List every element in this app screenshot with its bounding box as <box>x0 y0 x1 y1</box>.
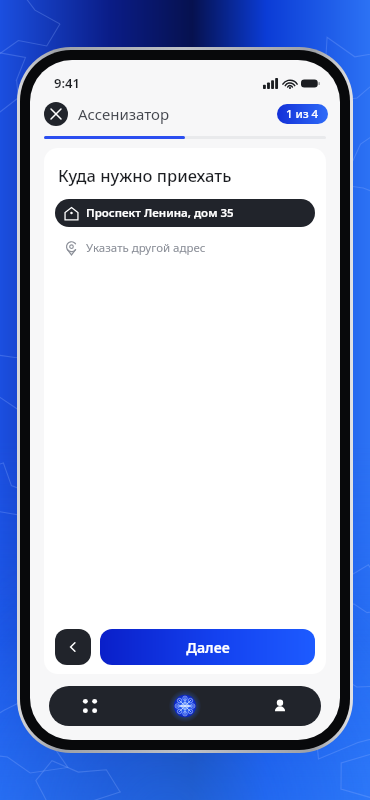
button[interactable]: Профиль <box>230 686 321 726</box>
staticText: 1 из 4 <box>286 106 319 122</box>
staticText: Далее <box>186 638 230 657</box>
button[interactable]: Назад <box>55 629 91 665</box>
button[interactable]: Указать другой адрес <box>55 235 315 261</box>
staticText: Куда нужно приехать <box>58 164 232 186</box>
button[interactable]: Закрыть <box>44 102 68 126</box>
button[interactable]: 1 из 4 <box>277 104 328 124</box>
staticText: Указать другой адрес <box>86 240 206 256</box>
button[interactable]: Главная <box>171 692 199 720</box>
button[interactable]: Меню <box>49 686 139 726</box>
button[interactable]: Далее <box>100 629 315 665</box>
staticText: Ассенизатор <box>78 104 170 124</box>
staticText: Проспект Ленина, дом 35 <box>86 205 234 221</box>
button[interactable]: Проспект Ленина, дом 35 <box>55 199 315 227</box>
staticText: 9:41 <box>54 74 80 92</box>
